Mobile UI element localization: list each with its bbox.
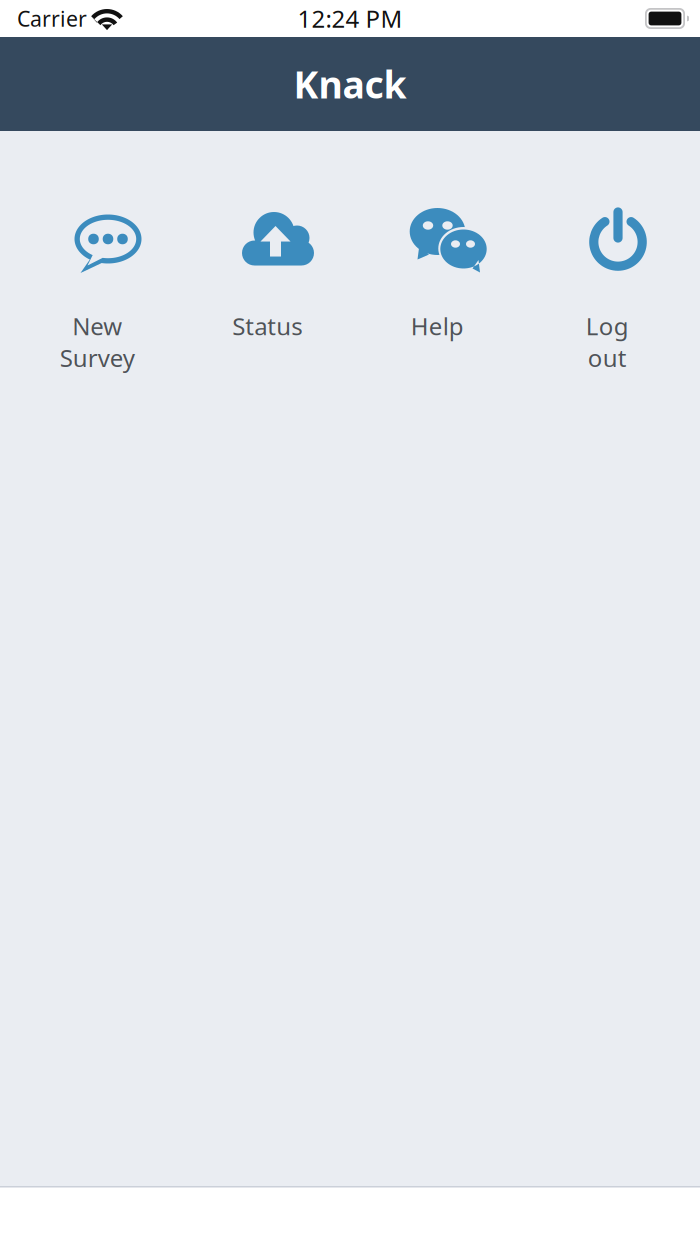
button[interactable]: New Survey	[23, 212, 193, 402]
staticText: New Survey	[59, 310, 134, 374]
button[interactable]: Help	[363, 212, 533, 402]
button[interactable]: Status	[193, 212, 363, 402]
staticText: 12:24 PM	[297, 3, 402, 34]
staticText: Status	[232, 310, 302, 342]
staticText: Log out	[585, 310, 628, 374]
button[interactable]: Log out	[533, 212, 700, 402]
staticText: Carrier	[17, 4, 87, 33]
staticText: Help	[410, 310, 463, 342]
staticText: Knack	[293, 59, 406, 109]
